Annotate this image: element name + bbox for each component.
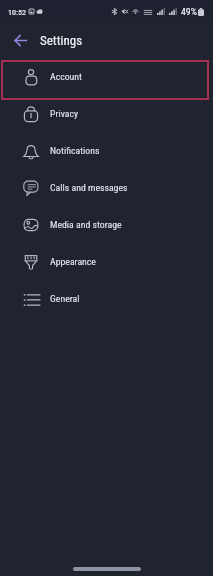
button[interactable]: Account bbox=[0, 58, 213, 95]
staticText: 10:52 bbox=[8, 7, 26, 16]
staticText: Calls and messages bbox=[50, 182, 128, 193]
button[interactable]: Media and storage bbox=[0, 206, 213, 243]
button[interactable]: Notifications bbox=[0, 132, 213, 169]
button[interactable]: Back bbox=[7, 27, 33, 53]
button[interactable]: Calls and messages bbox=[0, 169, 213, 206]
staticText: General bbox=[50, 293, 80, 304]
staticText: Appearance bbox=[50, 256, 96, 267]
staticText: Notifications bbox=[50, 145, 100, 156]
button[interactable]: General bbox=[0, 280, 213, 317]
staticText: 49% bbox=[181, 6, 197, 17]
staticText: Settings bbox=[40, 33, 83, 48]
staticText: Privacy bbox=[50, 108, 79, 119]
staticText: Account bbox=[50, 71, 82, 82]
button[interactable]: Privacy bbox=[0, 95, 213, 132]
staticText: Media and storage bbox=[50, 219, 122, 230]
button[interactable]: Appearance bbox=[0, 243, 213, 280]
